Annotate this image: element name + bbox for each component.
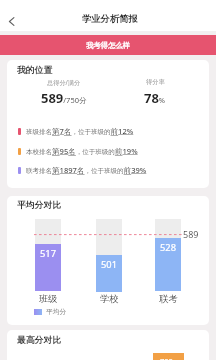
staticText: 平均分 — [46, 307, 67, 316]
button[interactable]: Back — [2, 13, 18, 29]
staticText: 589 — [183, 228, 199, 240]
staticText: 本校排名第95名，位于班级的前19% — [26, 146, 138, 156]
staticText: 589/750分 — [41, 89, 87, 107]
staticText: 班级排名第7名，位于班级的前12% — [26, 126, 134, 136]
staticText: 528 — [160, 241, 176, 254]
staticText: 我的位置 — [17, 65, 53, 76]
staticText: 联考 — [159, 293, 178, 305]
staticText: 517 — [40, 247, 56, 260]
staticText: 学业分析简报 — [82, 13, 138, 25]
staticText: 700 — [160, 356, 173, 360]
staticText: 联考排名第1897名，位于班级的前39% — [26, 165, 147, 175]
staticText: 最高分对比 — [17, 335, 61, 346]
staticText: 501 — [101, 258, 117, 271]
staticText: 学校 — [100, 293, 119, 305]
staticText: 班级 — [39, 293, 58, 305]
staticText: 78% — [144, 89, 166, 107]
staticText: 平均分对比 — [17, 200, 61, 211]
staticText: 总得分/满分 — [47, 78, 81, 86]
staticText: 我考得怎么样 — [86, 41, 130, 50]
staticText: 得分率 — [146, 78, 165, 86]
